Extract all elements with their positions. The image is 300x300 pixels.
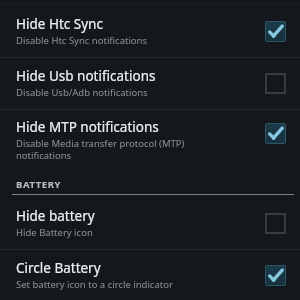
staticText: Set battery icon to a circle indicator [16, 278, 173, 290]
other: Enabled [264, 20, 286, 42]
staticText: Hide Usb notifications [16, 67, 156, 85]
button[interactable]: Circle Battery [0, 250, 300, 300]
other: Disabled [264, 212, 286, 234]
staticText: BATTERY [16, 178, 62, 191]
other: Disabled [264, 72, 286, 94]
staticText: Hide Battery icon [16, 226, 93, 239]
button[interactable]: Hide MTP notifications [0, 110, 300, 170]
staticText: Disable Media transfer protocol (MTP) no… [16, 137, 185, 162]
staticText: Hide battery [16, 207, 95, 225]
other: Enabled [264, 264, 286, 286]
button[interactable]: Hide battery [0, 201, 300, 249]
staticText: Hide Htc Sync [16, 15, 103, 33]
button[interactable]: Hide Usb notifications [0, 58, 300, 109]
button[interactable]: Hide Htc Sync [0, 9, 300, 57]
other: Enabled [264, 122, 286, 144]
staticText: Disable Htc Sync notifications [16, 34, 148, 47]
staticText: Disable Usb/Adb notifications [16, 86, 148, 99]
staticText: Circle Battery [16, 259, 101, 277]
staticText: Hide MTP notifications [16, 118, 159, 136]
